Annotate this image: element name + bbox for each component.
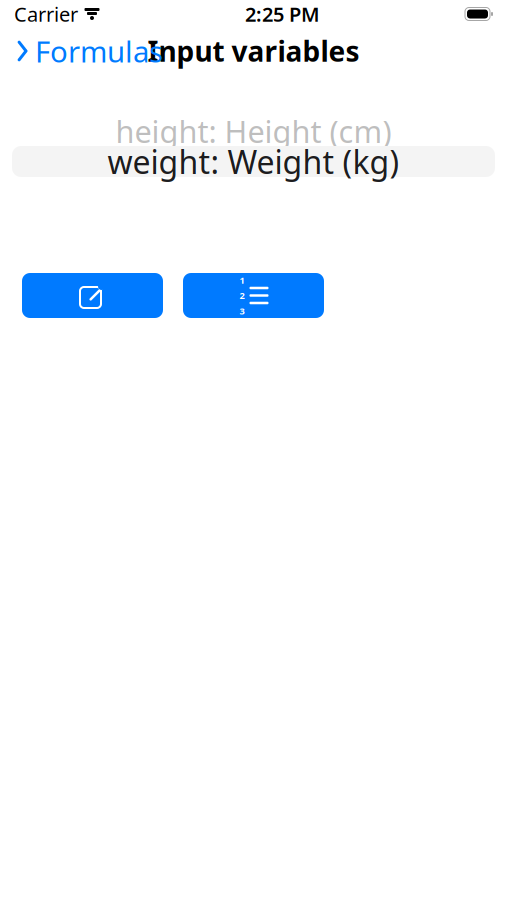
- staticText: 2:25 PM: [245, 1, 320, 27]
- button[interactable]: Edit formula: [22, 273, 163, 318]
- button[interactable]: weight: Weight (kg): [12, 146, 495, 177]
- staticText: Formulas: [35, 31, 163, 70]
- staticText: 1: [239, 274, 244, 286]
- button[interactable]: Formulas: [12, 25, 167, 76]
- staticText: height: Height (cm): [115, 111, 391, 151]
- button[interactable]: Show variable list: [183, 273, 324, 318]
- staticText: Carrier: [14, 1, 78, 27]
- staticText: 2: [239, 289, 244, 302]
- staticText: 3: [239, 305, 244, 317]
- button[interactable]: height: Height (cm): [12, 118, 495, 144]
- staticText: Input variables: [147, 32, 359, 70]
- staticText: weight: Weight (kg): [107, 140, 399, 183]
